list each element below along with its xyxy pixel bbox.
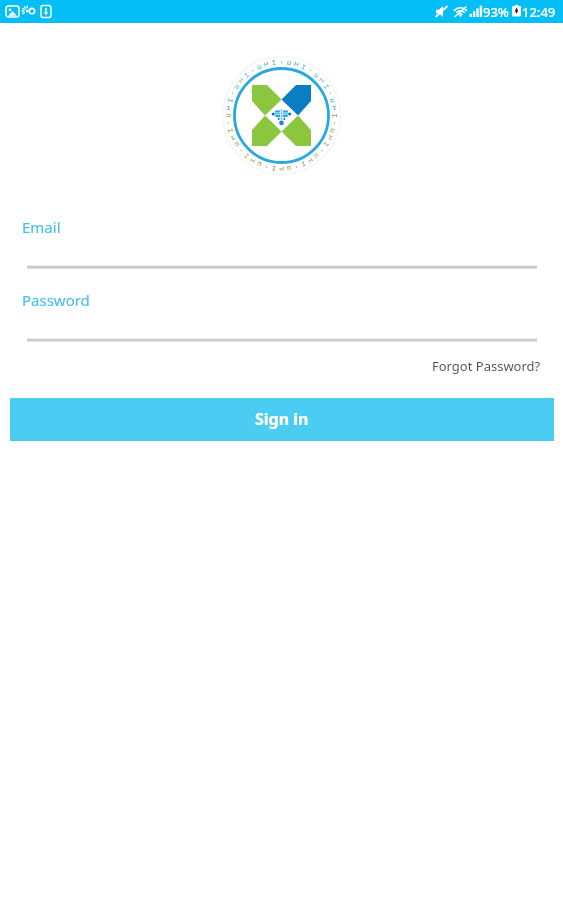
button[interactable]: Email — [8, 215, 555, 269]
staticText: Password — [22, 290, 90, 310]
staticText: Sign in — [255, 408, 309, 430]
other: App logo — [221, 55, 342, 176]
staticText: 12:49 — [522, 3, 556, 21]
staticText: Forgot Password? — [432, 357, 541, 375]
button[interactable]: Forgot Password? — [432, 357, 541, 375]
button[interactable]: Sign in — [10, 398, 554, 441]
staticText: 93% — [483, 3, 509, 21]
staticText: Email — [22, 217, 61, 237]
button[interactable]: Password — [8, 288, 555, 342]
